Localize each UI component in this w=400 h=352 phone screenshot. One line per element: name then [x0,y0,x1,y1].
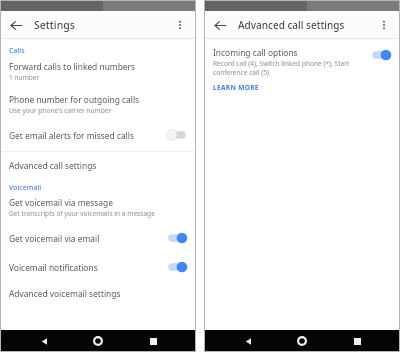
button[interactable]: Incoming call options [204,43,400,79]
button[interactable]: Phone number for outgoing calls [0,91,196,124]
staticText: Get voicemail via message [9,197,113,208]
button[interactable]: Advanced voicemail settings [0,284,196,304]
button[interactable]: Advanced call settings [0,152,196,177]
staticText: LEARN MORE [213,83,259,92]
button[interactable]: Recent apps [346,330,368,352]
button[interactable]: LEARN MORE [204,79,268,96]
staticText: Get voicemail via email [9,233,100,244]
staticText: Settings [34,18,75,32]
button[interactable]: Toggle on [370,48,392,62]
button[interactable]: Back [33,330,55,352]
staticText: Advanced call settings [9,160,97,171]
staticText: Incoming call options [213,47,298,58]
button[interactable]: Voicemail notifications [0,255,196,284]
staticText: Get email alerts for missed calls [9,130,134,141]
staticText: Calls [9,46,25,56]
button[interactable]: Toggle off [166,128,188,142]
button[interactable]: Navigate up [211,16,229,34]
staticText: 1 number [9,73,40,82]
button[interactable]: Get email alerts for missed calls [0,124,196,151]
button[interactable]: Toggle on [166,260,188,274]
staticText: Advanced voicemail settings [9,288,121,299]
button[interactable]: Home [291,330,313,352]
button[interactable]: Back [237,330,259,352]
button[interactable]: Navigate up [7,16,25,34]
button[interactable]: Get voicemail via email [0,227,196,255]
staticText: Voicemail notifications [9,262,98,273]
staticText: Use your phone's carrier number [9,106,112,115]
staticText: Get transcripts of your voicemails in a … [9,209,155,218]
button[interactable]: More options [375,16,393,34]
button[interactable]: Toggle on [166,231,188,245]
button[interactable]: Get voicemail via message [0,195,196,227]
button[interactable]: Forward calls to linked numbers [0,58,196,91]
staticText: Forward calls to linked numbers [9,61,136,72]
button[interactable]: More options [171,16,189,34]
staticText: Advanced call settings [238,18,345,32]
button[interactable]: Home [87,330,109,352]
staticText: Voicemail [9,183,42,193]
button[interactable]: Recent apps [142,330,164,352]
staticText: Record call (4), Switch linked phone (*)… [213,59,364,77]
staticText: Phone number for outgoing calls [9,94,140,105]
